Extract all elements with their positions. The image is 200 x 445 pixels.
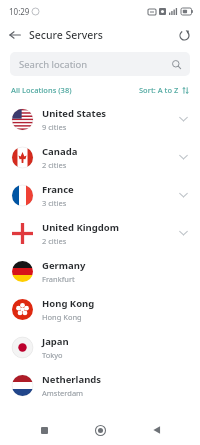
staticText: 2 cities [42,160,67,170]
staticText: All Locations (38) [11,85,72,95]
button[interactable]: Netherlands [0,366,200,404]
staticText: Canada [42,145,78,158]
button[interactable]: Hong Kong [0,290,200,328]
staticText: 9 cities [42,122,67,132]
button[interactable]: Japan [0,328,200,366]
button[interactable]: Back [144,417,170,443]
staticText: Amsterdam [42,388,84,398]
button[interactable]: Germany [0,252,200,290]
staticText: 2 cities [42,236,67,246]
staticText: Japan [42,335,69,348]
button[interactable]: Back [4,24,26,46]
staticText: Secure Servers [29,28,103,42]
staticText: 3 cities [42,198,67,208]
button[interactable]: United Kingdom [0,214,200,252]
staticText: Search location [19,58,88,71]
button[interactable]: United States [0,100,200,138]
button[interactable]: Home [87,417,113,443]
button[interactable]: Sort: A to Z [139,85,189,95]
staticText: Hong Kong [42,297,95,310]
staticText: United States [42,107,107,120]
staticText: Frankfurt [42,274,75,284]
staticText: Germany [42,259,86,272]
staticText: Hong Kong [42,312,82,322]
button[interactable]: France [0,176,200,214]
staticText: Sort: A to Z [139,85,179,95]
button[interactable]: Refresh [173,24,195,46]
staticText: France [42,183,74,196]
staticText: 10:29 [9,6,30,17]
button[interactable]: Canada [0,138,200,176]
button[interactable]: Recents [31,417,57,443]
staticText: Netherlands [42,373,102,386]
staticText: Tokyo [42,350,63,360]
button[interactable]: Search location [10,52,190,76]
staticText: United Kingdom [42,221,119,234]
